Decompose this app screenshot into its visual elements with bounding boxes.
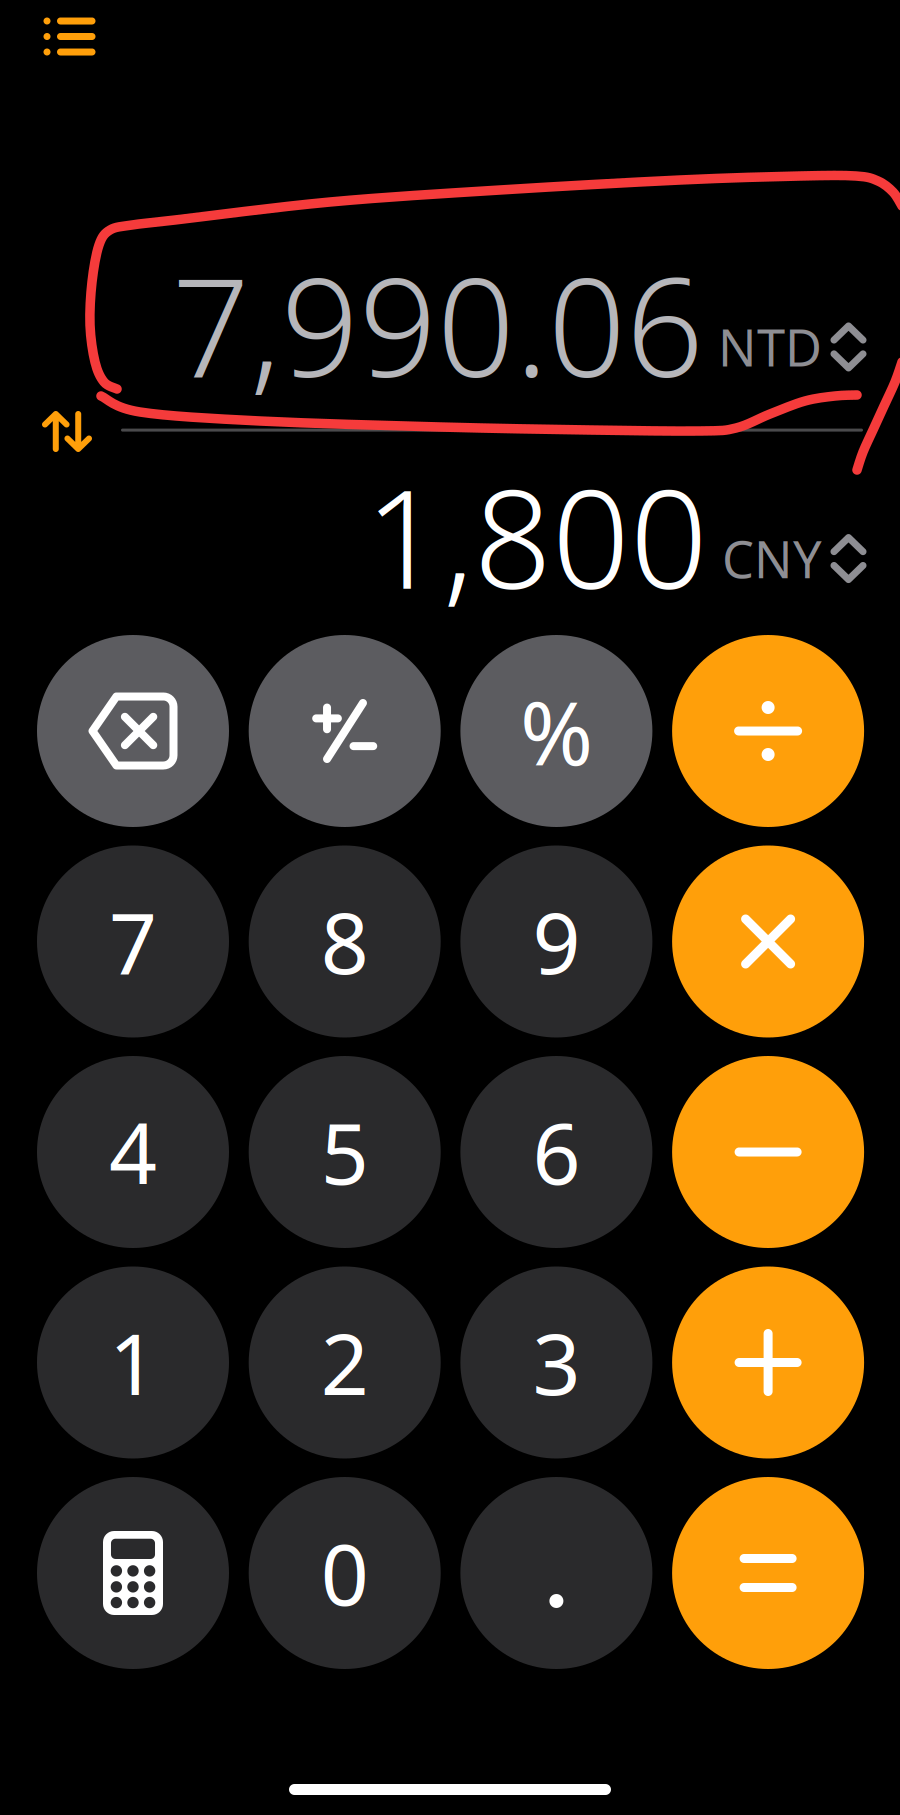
button[interactable]: Calculator (37, 1477, 229, 1669)
button[interactable]: Swap currencies (25, 394, 109, 469)
staticText: 4 (109, 1096, 157, 1208)
button[interactable]: 2 (249, 1266, 441, 1458)
staticText: 1,800 (365, 446, 708, 626)
staticText: 1 (109, 1307, 157, 1418)
staticText: 3 (532, 1307, 580, 1418)
staticText: CNY (722, 525, 822, 592)
button[interactable]: 1 (37, 1266, 229, 1458)
staticText: 7 (109, 886, 157, 997)
button[interactable]: Choose NTD (704, 313, 863, 415)
staticText: 9 (532, 886, 580, 997)
button[interactable]: Choose CNY (708, 525, 863, 626)
staticText: NTD (718, 313, 822, 381)
button[interactable]: 9 (460, 845, 652, 1037)
button[interactable]: Decimal point (460, 1477, 652, 1669)
button[interactable]: Divide (672, 635, 864, 827)
button[interactable]: Delete (37, 635, 229, 827)
button[interactable]: Add (672, 1266, 864, 1458)
staticText: % (520, 673, 593, 789)
button[interactable]: Multiply (672, 845, 864, 1037)
staticText: 8 (321, 886, 369, 997)
button[interactable]: Percent (460, 635, 652, 827)
button[interactable]: 3 (460, 1266, 652, 1458)
button[interactable]: 0 (249, 1477, 441, 1669)
staticText: 2 (321, 1307, 369, 1418)
staticText: 7,990.06 (172, 234, 704, 415)
button[interactable]: 5 (249, 1056, 441, 1248)
button[interactable]: 4 (37, 1056, 229, 1248)
button[interactable]: Subtract (672, 1056, 864, 1248)
staticText: 0 (321, 1517, 369, 1629)
button[interactable]: Equals (672, 1477, 864, 1669)
button[interactable]: 6 (460, 1056, 652, 1248)
button[interactable]: Toggle sign (249, 635, 441, 827)
staticText: 6 (532, 1096, 580, 1208)
button[interactable]: History (0, 0, 126, 82)
button[interactable]: 7 (37, 845, 229, 1037)
button[interactable]: 8 (249, 845, 441, 1037)
staticText: 5 (321, 1096, 369, 1208)
